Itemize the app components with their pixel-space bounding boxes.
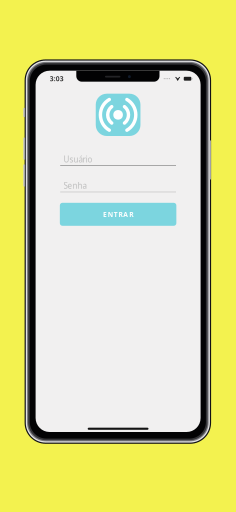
staticText: 3:03 bbox=[50, 74, 64, 83]
staticText: ENTRAR bbox=[103, 210, 133, 219]
staticText: Senha bbox=[64, 180, 87, 191]
staticText: Usuário bbox=[64, 154, 93, 165]
button[interactable]: ENTRAR bbox=[60, 203, 176, 226]
